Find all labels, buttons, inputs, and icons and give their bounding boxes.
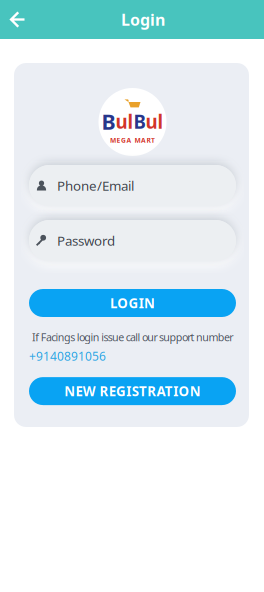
button[interactable]: Back <box>0 0 40 39</box>
staticText: B <box>101 107 115 136</box>
staticText: Login <box>121 9 165 30</box>
staticText: MEGA MART <box>110 136 155 145</box>
staticText: Password <box>57 232 115 249</box>
staticText: If Facings login issue call our support … <box>32 330 233 344</box>
button[interactable]: Phone/Email <box>29 165 236 206</box>
staticText: LOGIN <box>110 294 155 312</box>
staticText: NEW REGISTRATION <box>64 382 201 400</box>
button[interactable]: NEW REGISTRATION <box>29 377 236 405</box>
staticText: Phone/Email <box>57 177 134 194</box>
button[interactable]: +9140891056 <box>29 348 106 364</box>
staticText: ul <box>145 109 163 134</box>
staticText: ul <box>115 109 133 134</box>
button[interactable]: Password <box>29 220 236 261</box>
staticText: +9140891056 <box>29 348 106 364</box>
staticText: B <box>133 109 145 134</box>
button[interactable]: LOGIN <box>29 289 236 317</box>
